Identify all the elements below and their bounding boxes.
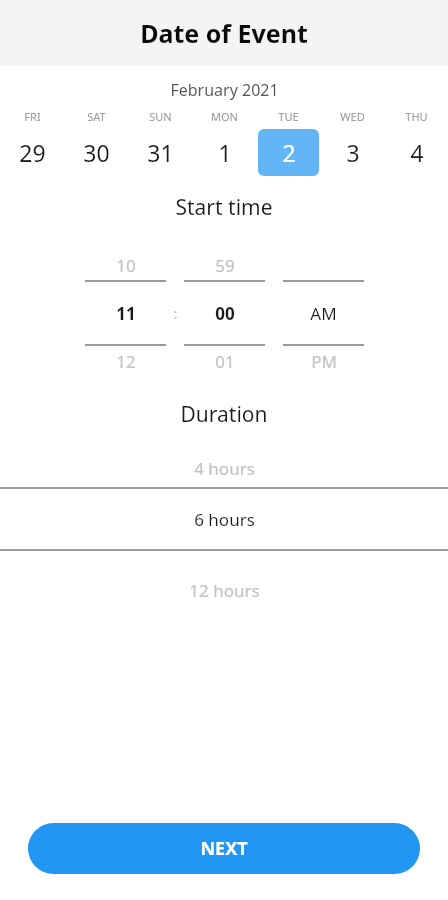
button[interactable]: TUE: [256, 109, 320, 176]
staticText: 1: [218, 137, 232, 168]
staticText: WED: [340, 109, 365, 124]
button[interactable]: AM: [283, 250, 364, 376]
staticText: PM: [311, 350, 337, 373]
button[interactable]: 59: [184, 250, 265, 376]
button[interactable]: 4 hours: [0, 449, 448, 487]
button[interactable]: FRI: [0, 109, 64, 176]
staticText: Date of Event: [140, 16, 308, 50]
staticText: Duration: [180, 400, 268, 429]
staticText: 29: [19, 137, 46, 168]
button[interactable]: 10: [85, 250, 166, 376]
staticText: 30: [83, 137, 110, 168]
staticText: Start time: [175, 193, 273, 222]
staticText: 11: [116, 302, 136, 325]
staticText: 12 hours: [189, 579, 260, 602]
staticText: THU: [405, 109, 428, 124]
staticText: SUN: [149, 109, 172, 124]
button[interactable]: WED: [320, 109, 384, 176]
staticText: 4: [410, 137, 424, 168]
button[interactable]: 6 hours: [0, 489, 448, 549]
button[interactable]: NEXT: [28, 823, 420, 874]
staticText: February 2021: [170, 79, 279, 101]
staticText: 31: [147, 137, 174, 168]
button[interactable]: MON: [192, 109, 256, 176]
staticText: AM: [310, 302, 337, 325]
staticText: 00: [215, 302, 235, 325]
staticText: SAT: [87, 109, 106, 124]
button[interactable]: SUN: [128, 109, 192, 176]
button[interactable]: 12 hours: [0, 551, 448, 629]
staticText: :: [173, 303, 178, 323]
staticText: 4 hours: [194, 457, 255, 480]
staticText: FRI: [24, 109, 41, 124]
staticText: TUE: [278, 109, 299, 124]
staticText: 10: [116, 254, 136, 277]
staticText: 59: [215, 254, 235, 277]
staticText: 3: [346, 137, 360, 168]
staticText: NEXT: [200, 836, 248, 861]
button[interactable]: THU: [384, 109, 448, 176]
staticText: 12: [116, 350, 136, 373]
staticText: MON: [211, 109, 238, 124]
staticText: 01: [215, 350, 235, 373]
staticText: 2: [282, 137, 296, 168]
button[interactable]: SAT: [64, 109, 128, 176]
staticText: 6 hours: [194, 508, 255, 531]
